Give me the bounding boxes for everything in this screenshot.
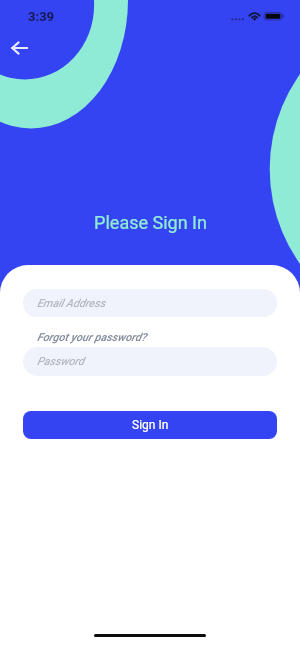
staticText: Please Sign In [94,212,207,233]
button[interactable]: Email Address [23,289,277,317]
staticText: Forgot your password? [37,331,147,344]
button[interactable]: Back [5,34,33,62]
staticText: Sign In [132,418,169,432]
button[interactable]: Forgot your password? [23,325,147,349]
staticText: Email Address [37,297,106,310]
staticText: Password [37,355,85,368]
button[interactable]: Password [23,347,277,376]
staticText: 3:39 [28,9,55,24]
button[interactable]: Sign In [23,411,277,439]
